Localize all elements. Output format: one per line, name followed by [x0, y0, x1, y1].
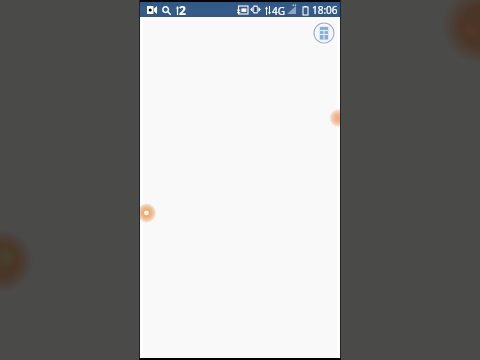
staticText: 4G: [272, 4, 285, 18]
staticText: 2: [179, 2, 186, 17]
button[interactable]: Open document: [312, 21, 336, 45]
staticText: 18:06: [312, 3, 338, 17]
